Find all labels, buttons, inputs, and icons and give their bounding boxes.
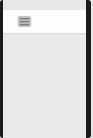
button[interactable]: Menu (17, 15, 32, 28)
